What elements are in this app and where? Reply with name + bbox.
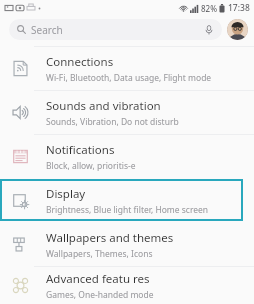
staticText: Advanced featu res xyxy=(46,271,150,287)
staticText: Wallpapers, Themes, Icons xyxy=(46,248,153,260)
button[interactable]: Notifications xyxy=(0,135,254,178)
staticText: Games, One-handed mode xyxy=(46,289,154,301)
staticText: Wallpapers and themes xyxy=(46,230,174,246)
staticText: Brightness, Blue light filter, Home scre… xyxy=(46,204,209,216)
button[interactable]: Search xyxy=(9,19,222,40)
button[interactable]: Wallpapers and themes xyxy=(0,223,254,266)
staticText: 17:38 xyxy=(228,2,250,14)
staticText: Search xyxy=(31,23,63,37)
staticText: Connections xyxy=(46,54,114,70)
button[interactable]: Account xyxy=(227,19,248,40)
staticText: Sounds and vibration xyxy=(46,98,161,114)
staticText: 82% xyxy=(201,3,217,14)
button[interactable]: Connections xyxy=(0,47,254,90)
staticText: Wi-Fi, Bluetooth, Data usage, Flight mod… xyxy=(46,72,212,84)
button[interactable]: Advanced featu res xyxy=(0,267,254,304)
staticText: Display xyxy=(46,186,86,202)
staticText: Block, allow, prioritis-e xyxy=(46,160,136,172)
staticText: Notifications xyxy=(46,142,115,158)
staticText: Sounds, Vibration, Do not disturb xyxy=(46,116,179,128)
button[interactable]: Voice search xyxy=(202,23,216,37)
button[interactable]: Sounds and vibration xyxy=(0,91,254,134)
button[interactable]: Display xyxy=(0,179,254,222)
